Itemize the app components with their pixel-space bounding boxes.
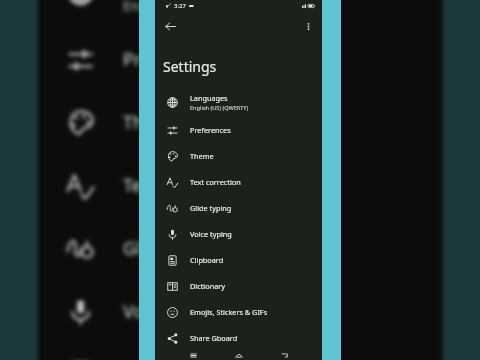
button[interactable]: Languages	[38, 0, 442, 27]
staticText: Theme	[123, 110, 181, 134]
button[interactable]: Voice typing	[155, 221, 322, 247]
staticText: Emojis, Stickers & GIFs	[190, 307, 268, 317]
staticText: Languages	[190, 93, 228, 103]
button[interactable]: Theme	[155, 143, 322, 169]
button[interactable]: Clipboard	[155, 247, 322, 273]
button[interactable]: Glide typing	[38, 216, 442, 279]
button[interactable]: Text correction	[38, 153, 442, 216]
staticText: Preferences	[190, 125, 231, 135]
button[interactable]: Glide typing	[155, 195, 322, 221]
button[interactable]: Preferences	[38, 27, 442, 90]
button[interactable]: Share Gboard	[155, 325, 322, 351]
button[interactable]: More options	[298, 16, 318, 36]
button[interactable]: Theme	[38, 90, 442, 153]
staticText: Dictionary	[190, 281, 225, 291]
button[interactable]: Recent apps	[185, 351, 201, 360]
button[interactable]: Voice typing	[38, 279, 442, 342]
staticText: Text correction	[190, 177, 241, 187]
button[interactable]: Languages	[155, 87, 322, 117]
staticText: English (US) (QWERTY)	[190, 104, 249, 112]
staticText: Voice typing	[123, 299, 225, 323]
staticText: Voice typing	[190, 229, 232, 239]
button[interactable]: Emojis, Stickers & GIFs	[155, 299, 322, 325]
staticText: Glide typing	[123, 236, 225, 260]
button[interactable]: Dictionary	[155, 273, 322, 299]
staticText: Clipboard	[190, 255, 224, 265]
staticText: Share Gboard	[190, 333, 238, 343]
button[interactable]: Navigate up	[160, 16, 180, 36]
button[interactable]: Home	[231, 351, 247, 360]
button[interactable]: Text correction	[155, 169, 322, 195]
staticText: Theme	[190, 151, 214, 161]
staticText: 3:27	[174, 2, 186, 10]
staticText: Preferences	[123, 47, 222, 71]
staticText: Glide typing	[190, 203, 232, 213]
staticText: Text correction	[123, 173, 246, 197]
button[interactable]: Back	[276, 351, 292, 360]
button[interactable]: Clipboard	[38, 342, 442, 360]
staticText: English (US) (QWERTY)	[123, 0, 266, 15]
staticText: Settings	[163, 57, 217, 76]
button[interactable]: Preferences	[155, 117, 322, 143]
